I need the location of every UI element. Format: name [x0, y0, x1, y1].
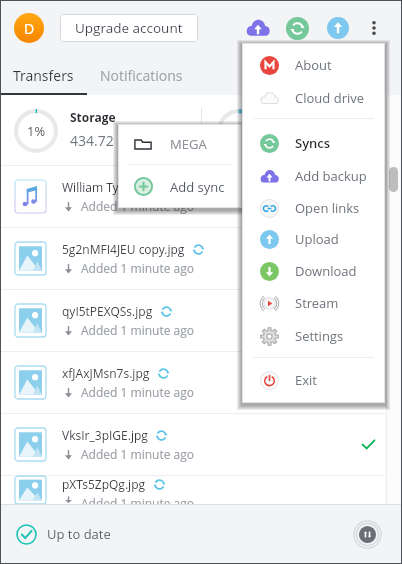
staticText: Added 1 minute ago	[81, 260, 194, 276]
staticText: Add backup	[295, 167, 367, 185]
button[interactable]: 5g2nMFI4JEU copy.jpg	[0, 228, 402, 289]
staticText: Exit	[295, 371, 317, 389]
staticText: Open links	[295, 199, 360, 217]
staticText: Storage	[70, 109, 116, 125]
button[interactable]: VksIr_3pIGE.jpg	[0, 414, 402, 475]
staticText: Notifications	[100, 66, 183, 85]
staticText: Transfers	[13, 66, 74, 85]
button[interactable]: Syncs	[242, 127, 385, 159]
staticText: Up to date	[47, 525, 111, 543]
staticText: Added 1 minute ago	[81, 198, 194, 214]
button[interactable]: Cloud drive	[242, 82, 385, 114]
staticText: William Tyler - Whole New Dub	[62, 179, 234, 195]
staticText: 1%	[27, 122, 46, 140]
staticText: MEGA	[170, 135, 207, 153]
staticText: Added 1 minute ago	[81, 446, 194, 462]
button[interactable]: Upload	[322, 12, 354, 44]
button[interactable]: Exit	[242, 364, 385, 396]
staticText: Syncs	[295, 134, 331, 152]
button[interactable]: William Tyler - Whole New Dub	[0, 166, 402, 227]
staticText: Added 1 minute ago	[81, 322, 194, 338]
button[interactable]: Add sync	[118, 165, 242, 208]
staticText: Add sync	[170, 178, 225, 196]
button[interactable]: About	[242, 49, 385, 81]
button[interactable]: Add backup	[242, 12, 274, 44]
button[interactable]: Settings	[242, 320, 385, 352]
staticText: Download	[295, 262, 357, 280]
staticText: Upload	[295, 230, 339, 248]
staticText: Added 1 minute ago	[81, 495, 194, 504]
button[interactable]: Stream	[242, 287, 385, 319]
staticText: Settings	[295, 327, 344, 345]
button[interactable]: More options	[361, 15, 387, 41]
staticText: D	[24, 19, 35, 38]
staticText: pXTs5ZpQg.jpg	[62, 476, 146, 492]
button[interactable]: xfJAxJMsn7s.jpg	[0, 352, 402, 413]
button[interactable]: MEGA	[118, 124, 242, 164]
button[interactable]: qyI5tPEXQSs.jpg	[0, 290, 402, 351]
staticText: About	[295, 56, 332, 74]
staticText: Cloud drive	[295, 89, 365, 107]
button[interactable]: pXTs5ZpQg.jpg	[0, 476, 402, 504]
button[interactable]: Notifications	[86, 56, 196, 95]
button[interactable]: Download	[242, 255, 385, 287]
button[interactable]: Transfers	[0, 56, 86, 95]
staticText: qyI5tPEXQSs.jpg	[62, 303, 153, 319]
staticText: xfJAxJMsn7s.jpg	[62, 365, 150, 381]
staticText: Added 1 minute ago	[81, 384, 194, 400]
button[interactable]: Open links	[242, 192, 385, 224]
staticText: Stream	[295, 294, 339, 312]
staticText: Upgrade account	[75, 19, 183, 37]
button[interactable]: Upload	[242, 223, 385, 255]
staticText: VksIr_3pIGE.jpg	[62, 427, 148, 443]
button[interactable]: Add backup	[242, 160, 385, 192]
button[interactable]: Upgrade account	[60, 14, 198, 42]
button[interactable]: Transfer manager	[352, 519, 382, 549]
button[interactable]: Syncs	[281, 12, 313, 44]
button[interactable]: D	[14, 13, 44, 43]
staticText: 434.72 MB of 50 GB	[70, 131, 199, 150]
staticText: 5g2nMFI4JEU copy.jpg	[62, 241, 185, 257]
